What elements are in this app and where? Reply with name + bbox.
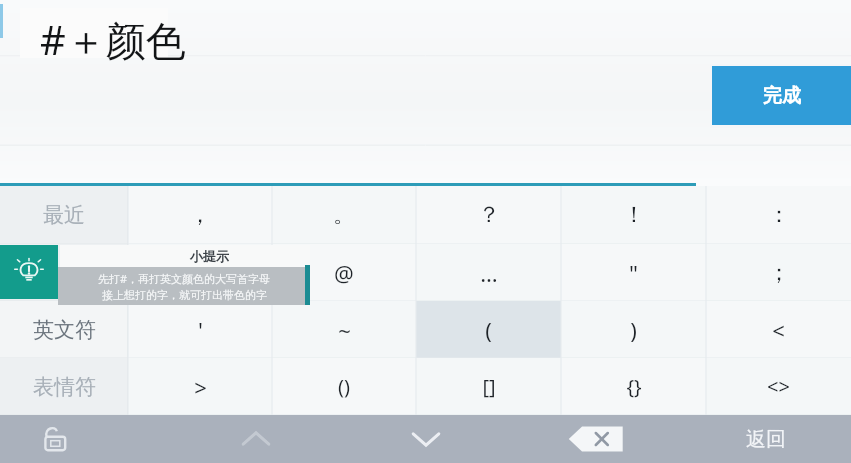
button[interactable]: () — [272, 358, 416, 415]
staticText: … — [480, 258, 498, 288]
staticText: <> — [767, 373, 790, 400]
staticText: 接上想打的字，就可打出带色的字 — [102, 288, 267, 302]
staticText: ； — [768, 259, 790, 287]
staticText: 表情符 — [33, 374, 96, 400]
staticText: ( — [485, 315, 492, 345]
staticText: 、 — [189, 259, 211, 287]
button[interactable]: @ — [272, 244, 416, 301]
button[interactable]: < — [706, 301, 851, 358]
button[interactable]: 英文符 — [0, 301, 128, 358]
staticText: 最近 — [43, 202, 85, 228]
staticText: < — [772, 315, 785, 345]
button[interactable]: Backspace — [511, 415, 681, 463]
staticText: > — [194, 372, 207, 402]
staticText: ： — [768, 201, 790, 229]
button[interactable]: 。 — [272, 186, 416, 244]
staticText: ~ — [338, 315, 351, 345]
button[interactable]: 、 — [128, 244, 272, 301]
button[interactable]: … — [416, 244, 561, 301]
button[interactable]: ) — [561, 301, 706, 358]
staticText: ！ — [623, 201, 645, 229]
button[interactable]: ； — [706, 244, 851, 301]
button[interactable]: ' — [128, 301, 272, 358]
button[interactable]: Lock — [0, 415, 171, 463]
button[interactable]: 完成 — [712, 66, 851, 125]
staticText: " — [629, 258, 638, 288]
button[interactable]: Page down — [341, 415, 511, 463]
staticText: 中文符 — [33, 260, 96, 286]
button[interactable]: ( — [416, 301, 561, 358]
staticText: 小提示 — [190, 248, 229, 264]
button[interactable]: ， — [128, 186, 272, 244]
staticText: [] — [482, 373, 496, 400]
button[interactable]: ： — [706, 186, 851, 244]
staticText: @ — [334, 258, 354, 288]
button[interactable]: 返回 — [681, 415, 851, 463]
button[interactable]: > — [128, 358, 272, 415]
button[interactable]: {} — [561, 358, 706, 415]
button[interactable]: ！ — [561, 186, 706, 244]
button[interactable]: ？ — [416, 186, 561, 244]
staticText: ) — [630, 315, 637, 345]
button[interactable]: " — [561, 244, 706, 301]
staticText: 返回 — [746, 427, 786, 452]
button[interactable]: 表情符 — [0, 358, 128, 415]
staticText: ， — [189, 201, 211, 229]
button[interactable]: 最近 — [0, 186, 128, 244]
staticText: 。 — [333, 201, 355, 229]
button[interactable]: <> — [706, 358, 851, 415]
staticText: 完成 — [763, 84, 801, 108]
staticText: 先打#，再打英文颜色的大写首字母 — [98, 271, 271, 286]
staticText: () — [338, 373, 350, 400]
staticText: ' — [198, 315, 203, 345]
button[interactable]: [] — [416, 358, 561, 415]
staticText: #＋颜色 — [40, 12, 186, 67]
button[interactable]: 中文符 — [0, 244, 128, 301]
staticText: {} — [626, 373, 642, 400]
button[interactable]: ~ — [272, 301, 416, 358]
staticText: 英文符 — [33, 317, 96, 343]
staticText: ？ — [478, 201, 500, 229]
